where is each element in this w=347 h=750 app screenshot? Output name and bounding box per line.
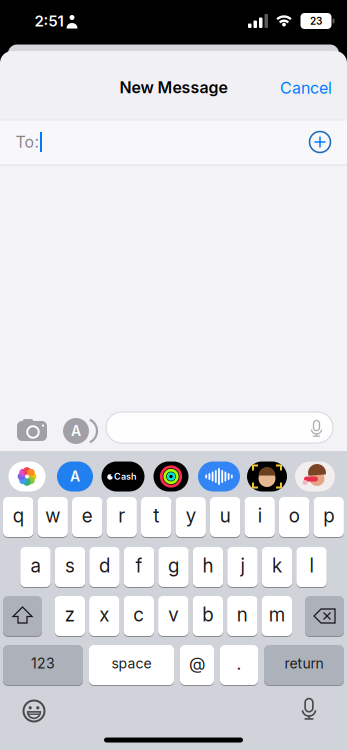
button[interactable]: m xyxy=(262,595,292,636)
button[interactable]: Fitness xyxy=(153,461,188,491)
staticText: space xyxy=(111,655,151,672)
button[interactable]: . xyxy=(220,644,258,685)
button[interactable]: u xyxy=(210,496,240,537)
staticText: Cash xyxy=(114,471,137,482)
button[interactable]: n xyxy=(227,595,257,636)
button[interactable]: z xyxy=(55,595,85,636)
staticText: y xyxy=(186,504,196,527)
button[interactable]: y xyxy=(175,496,206,537)
staticText: a xyxy=(30,554,40,577)
button[interactable]: Photos xyxy=(8,461,45,491)
staticText: A xyxy=(71,423,81,439)
staticText: f xyxy=(135,554,142,577)
staticText: c xyxy=(133,603,144,626)
staticText: A xyxy=(70,468,80,485)
staticText: 2:51 xyxy=(34,12,63,30)
button[interactable]: e xyxy=(72,496,102,537)
staticText: k xyxy=(272,554,282,577)
staticText: Cancel xyxy=(280,79,332,97)
staticText: @ xyxy=(189,653,205,674)
button[interactable]: i xyxy=(244,496,275,537)
staticText: q xyxy=(13,504,24,527)
button[interactable]: t xyxy=(141,496,171,537)
staticText: To: xyxy=(15,133,38,151)
button[interactable]: v xyxy=(158,595,188,636)
button[interactable]: Dictation xyxy=(300,697,317,720)
button[interactable]: Camera xyxy=(16,418,48,444)
staticText: w xyxy=(45,504,60,527)
button[interactable]: space xyxy=(89,644,174,685)
button[interactable]: Music xyxy=(198,461,240,491)
button[interactable]: j xyxy=(227,546,258,587)
button[interactable]: App Store xyxy=(57,461,93,491)
button[interactable]: h xyxy=(193,546,223,587)
staticText: o xyxy=(289,504,300,527)
button[interactable]: g xyxy=(158,546,189,587)
staticText: x xyxy=(99,603,109,626)
staticText: j xyxy=(240,554,244,577)
button[interactable]: c xyxy=(124,595,154,636)
button[interactable]: r xyxy=(106,496,137,537)
staticText: . xyxy=(236,653,241,674)
staticText: h xyxy=(202,554,213,577)
button[interactable]: @ xyxy=(180,644,214,685)
staticText: g xyxy=(168,554,179,577)
button[interactable]: Shift xyxy=(3,595,42,636)
button[interactable]: p xyxy=(313,496,344,537)
button[interactable]: Delete xyxy=(305,595,344,636)
staticText: New Message xyxy=(119,78,227,97)
staticText: i xyxy=(258,504,262,527)
button[interactable]: Stickers xyxy=(295,461,335,491)
button[interactable]: Cancel xyxy=(280,79,332,97)
button[interactable]: x xyxy=(89,595,119,636)
button[interactable]: Apps xyxy=(60,418,98,444)
staticText: u xyxy=(220,504,231,527)
button[interactable]: 123 xyxy=(3,644,83,685)
staticText: e xyxy=(82,504,93,527)
staticText: n xyxy=(237,603,248,626)
button[interactable]: Apple Cash xyxy=(101,461,144,491)
button[interactable]: l xyxy=(296,546,327,587)
button[interactable]: Emoji xyxy=(22,699,46,723)
button[interactable]: a xyxy=(20,546,51,587)
staticText: m xyxy=(269,603,285,626)
button[interactable]: d xyxy=(89,546,120,587)
staticText: 23 xyxy=(310,15,322,27)
button[interactable]: k xyxy=(262,546,292,587)
button[interactable]: w xyxy=(37,496,68,537)
button[interactable]: s xyxy=(55,546,85,587)
staticText: s xyxy=(65,554,75,577)
staticText: d xyxy=(99,554,110,577)
button[interactable]: return xyxy=(264,644,344,685)
staticText: b xyxy=(202,603,213,626)
staticText: return xyxy=(284,655,323,672)
staticText: r xyxy=(118,504,125,527)
button[interactable]: q xyxy=(3,496,33,537)
staticText: p xyxy=(323,504,334,527)
staticText: t xyxy=(153,504,159,527)
button[interactable]: Add Contact xyxy=(306,128,334,156)
button[interactable]: iMessage text field xyxy=(106,412,333,443)
staticText: l xyxy=(309,554,313,577)
button[interactable]: o xyxy=(279,496,309,537)
staticText: z xyxy=(65,603,75,626)
button[interactable]: f xyxy=(124,546,154,587)
staticText: 123 xyxy=(31,655,55,672)
button[interactable]: b xyxy=(193,595,223,636)
button[interactable]: Memoji xyxy=(247,461,287,491)
staticText: v xyxy=(168,603,178,626)
